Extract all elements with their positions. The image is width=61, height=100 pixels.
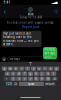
button[interactable]: h [34,72,39,76]
button[interactable]: w [8,66,13,71]
staticText: a [7,72,8,75]
staticText: This chat is not with a saved contact. [6,21,54,24]
button[interactable]: c [22,77,27,81]
staticText: x [18,77,19,80]
staticText: s [13,72,14,75]
staticText: “I” [29,62,32,66]
button[interactable]: p [54,66,59,71]
staticText: d [18,72,20,75]
button[interactable]: m [45,77,50,81]
staticText: ▂▄▆ [51,1,57,4]
staticText: r [21,67,22,70]
staticText: ☺ [14,82,17,85]
button[interactable]: r [19,66,24,71]
button[interactable]: ☺ [13,82,18,86]
button[interactable]: Details [53,7,59,16]
button[interactable]: o [48,66,53,71]
staticText: y [33,67,34,70]
button[interactable]: l [51,72,56,76]
button[interactable]: s [10,72,16,76]
button[interactable]: v [28,77,33,81]
staticText: ⓘ [54,9,58,14]
button[interactable]: iMessage [7,57,59,61]
button[interactable]: f [22,72,27,76]
button[interactable]: return [44,82,55,86]
button[interactable]: Add [2,57,6,61]
button[interactable]: 123 [5,82,13,86]
button[interactable]: a [5,72,10,76]
staticText: w [9,67,11,70]
button[interactable]: Alex [28,7,33,16]
button[interactable]: i [42,66,48,71]
button[interactable]: y [31,66,36,71]
staticText: p [56,67,58,70]
staticText: f [24,72,25,75]
button[interactable]: t [25,66,30,71]
button[interactable]: j [39,72,45,76]
staticText: iMessage [9,57,21,61]
button[interactable]: n [39,77,45,81]
staticText: h [35,72,37,75]
button[interactable]: e [13,66,19,71]
staticText: b [35,77,37,80]
staticText: 123 [6,82,12,86]
staticText: Perfect, see you soon! [44,48,55,58]
staticText: c [24,77,25,80]
staticText: ⌫ [52,77,56,80]
staticText: q [3,67,5,70]
button[interactable]: k [45,72,50,76]
button[interactable]: space [19,82,44,86]
button[interactable]: ⇧ [3,77,10,81]
staticText: t [27,67,28,70]
staticText: Today 10:14 AM [19,16,41,19]
button[interactable]: Back [2,7,7,16]
staticText: l [53,72,54,75]
button[interactable]: ⌫ [51,77,58,81]
staticText: m [47,77,49,80]
button[interactable]: b [34,77,39,81]
staticText: 9:41 [3,1,10,4]
staticText: Hey! Just landed and heading over to the… [3,32,39,46]
button[interactable]: q [2,66,7,71]
staticText: Report Junk [22,25,39,29]
staticText: v [30,77,31,80]
staticText: return [45,82,54,86]
staticText: e [15,67,17,70]
staticText: i [44,67,45,70]
staticText: n [41,77,43,80]
staticText: g [29,72,31,75]
staticText: ⇧ [6,77,8,80]
staticText: ‹ [4,7,6,16]
staticText: j [42,72,43,75]
staticText: z [13,77,14,80]
staticText: Alex [28,12,33,16]
button[interactable]: u [37,66,42,71]
staticText: space [28,82,35,86]
staticText: k [47,72,48,75]
button[interactable]: d [16,72,21,76]
staticText: u [38,67,40,70]
button[interactable]: z [10,77,16,81]
staticText: o [50,67,52,70]
button[interactable]: x [16,77,21,81]
button[interactable]: g [28,72,33,76]
staticText: + [3,56,5,62]
